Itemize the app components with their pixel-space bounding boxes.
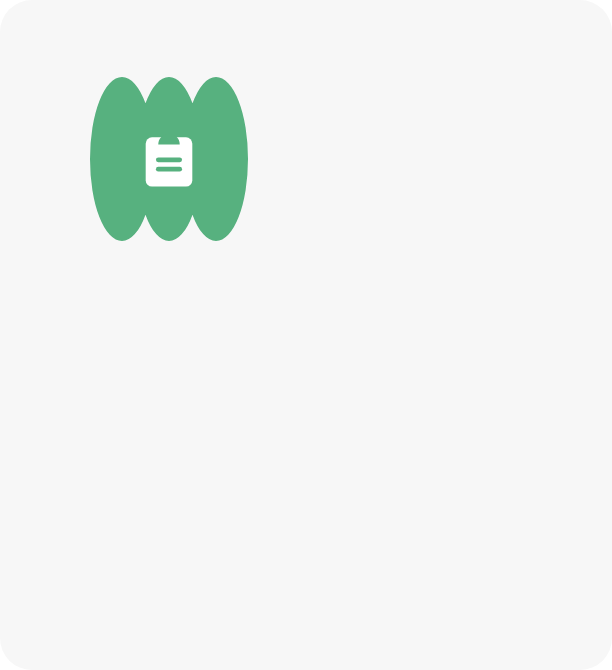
button[interactable]: App logo bbox=[90, 77, 248, 241]
